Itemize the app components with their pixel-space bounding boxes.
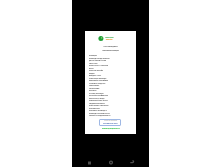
button[interactable]: Мобильное приложение (99, 119, 121, 126)
staticText: Мобильное приложение (104, 120, 118, 121)
staticText: Сбербанк Онл (103, 122, 118, 125)
staticText: История операции (89, 92, 104, 94)
button[interactable]: Back (128, 158, 136, 166)
staticText: Мобильный банк и пуш (89, 99, 108, 101)
staticText: Курсы валют и металлов (89, 104, 109, 106)
staticText: ЖКХи (89, 67, 94, 69)
staticText: Переводы за рубеж СБПна (89, 112, 110, 114)
staticText: Уведомления банка (89, 102, 105, 104)
staticText: www.sberbank.ru (102, 127, 120, 130)
staticText: сберовские операции (85, 49, 136, 51)
staticText: Платежи ЖКХ (89, 107, 100, 109)
staticText: Свои счета (89, 62, 98, 64)
staticText: Оплата услуг и сервисов (89, 64, 108, 66)
button[interactable]: Recents (85, 158, 93, 166)
staticText: Шаблоны (89, 89, 97, 91)
staticText: Страховые продукты (89, 82, 106, 84)
staticText: Переводы между картами (89, 57, 110, 59)
staticText: СберСпасибо (89, 84, 100, 86)
staticText: Безопасность входа (89, 97, 105, 99)
staticText: Часто проводимые (85, 45, 136, 47)
staticText: Сбербанк (105, 36, 114, 38)
button[interactable]: www.sberbank.ru (85, 127, 136, 130)
staticText: Вклады и счета (89, 74, 102, 76)
staticText: других банков России (89, 59, 107, 61)
button[interactable]: Home (107, 158, 115, 166)
staticText: Операции (89, 54, 97, 56)
staticText: Автоплатежи (89, 87, 100, 89)
staticText: Брокерское обслуживан (89, 79, 108, 81)
staticText: Налоги и штрафы (89, 69, 103, 71)
staticText: Инвестиции и вклады (89, 77, 107, 79)
staticText: Платежи и переводы в (89, 109, 107, 111)
staticText: Сервисы и предложения ба (89, 114, 111, 116)
staticText: Кредит (89, 72, 95, 74)
staticText: Настройки профиля бан (89, 94, 108, 96)
staticText: Онлайн (106, 38, 113, 40)
